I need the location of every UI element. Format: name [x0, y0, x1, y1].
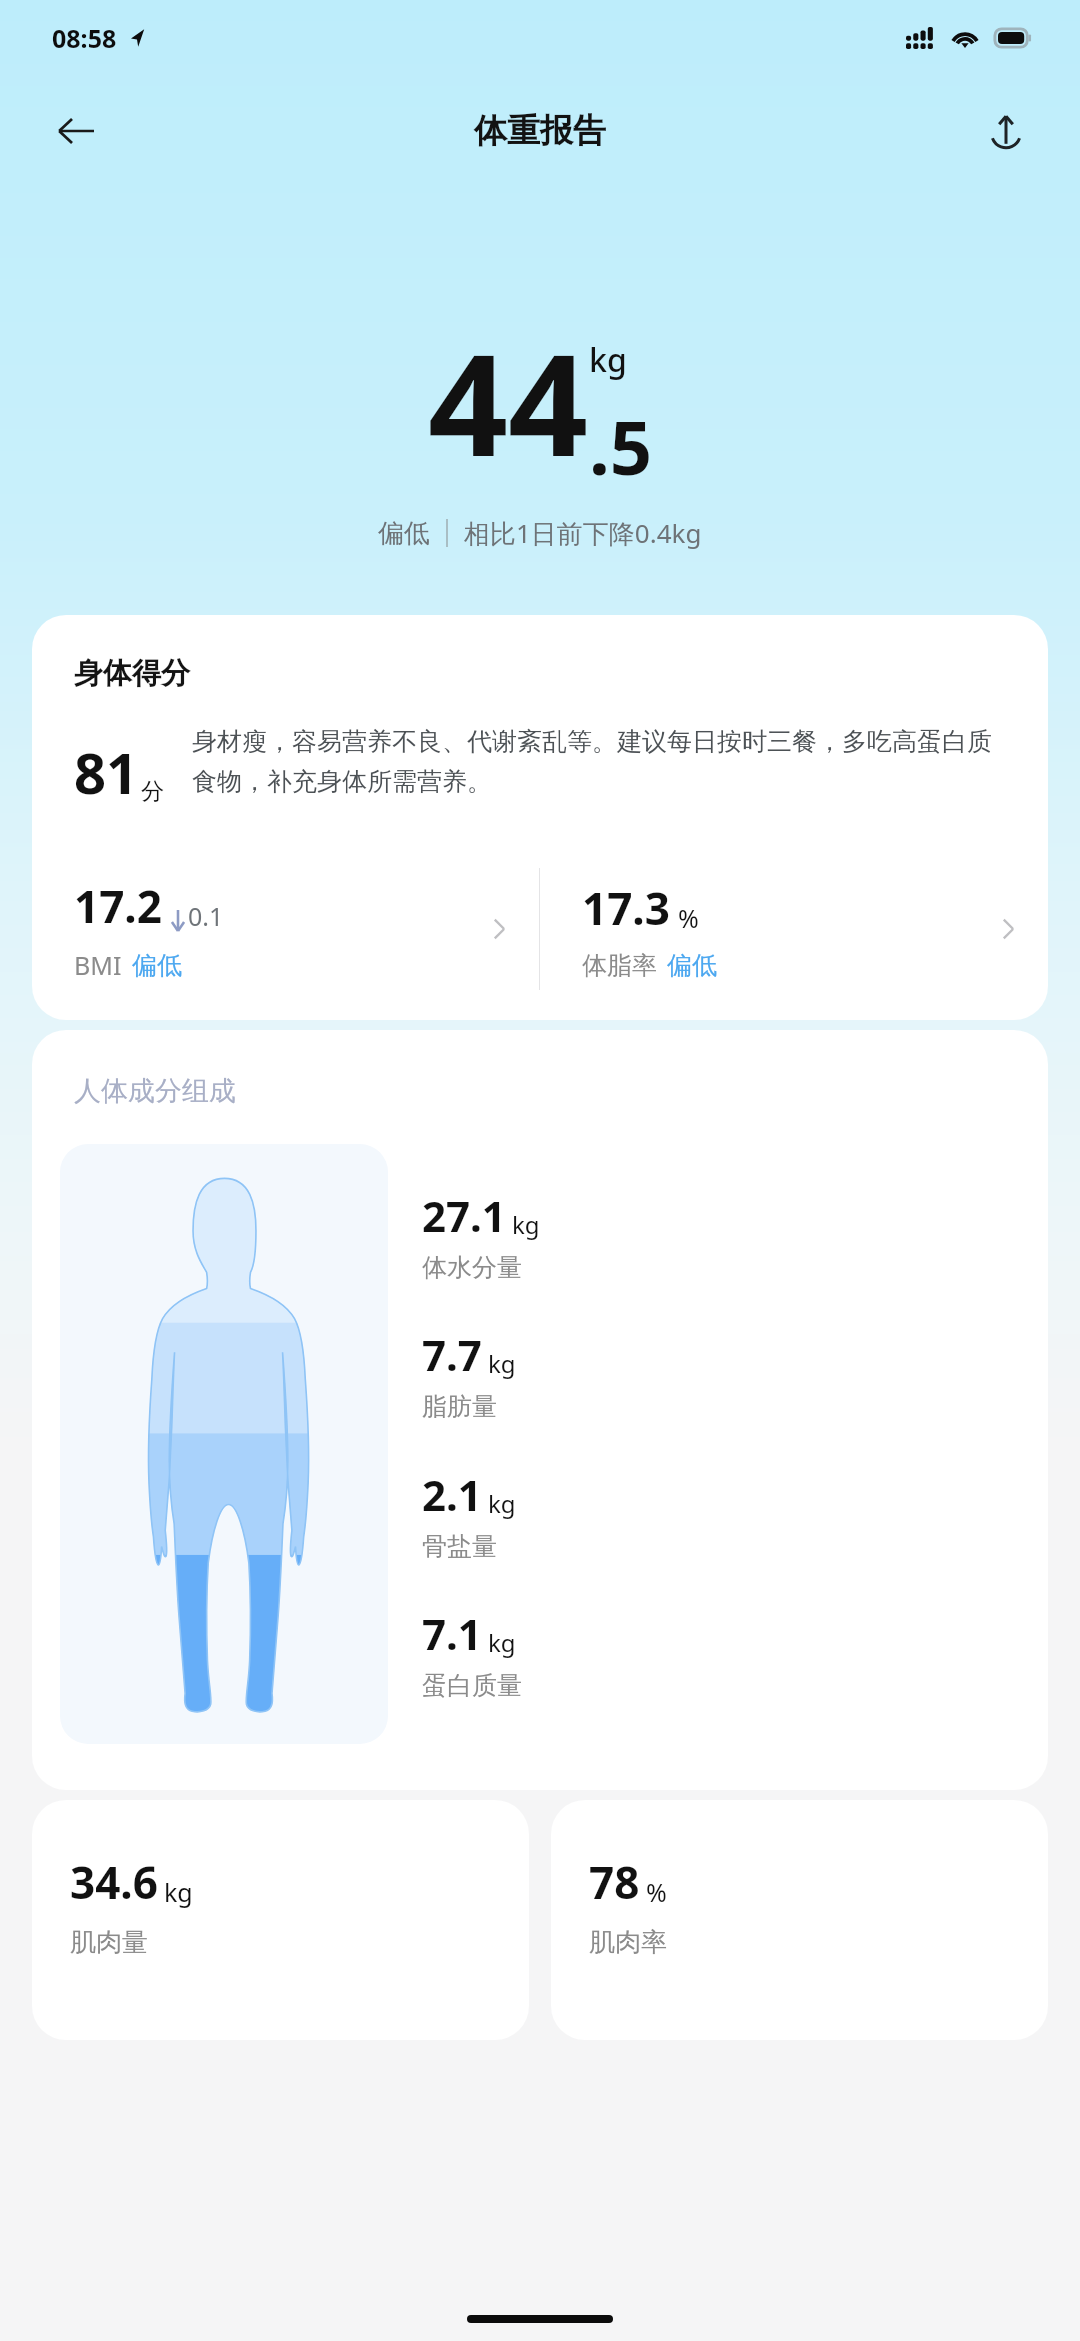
staticText: kg — [589, 338, 627, 382]
staticText: 81 — [74, 734, 139, 810]
staticText: 体重报告 — [474, 110, 606, 152]
staticText: 肌肉量 — [70, 1926, 148, 1959]
staticText: 27.1 — [422, 1187, 506, 1244]
staticText: 体脂率 — [582, 950, 657, 981]
staticText: 脂肪量 — [422, 1391, 497, 1422]
staticText: .5 — [589, 396, 653, 497]
staticText: BMI — [74, 948, 122, 982]
staticText: 偏低 — [132, 950, 182, 981]
staticText: 17.2 — [74, 876, 162, 936]
staticText: 肌肉率 — [589, 1926, 667, 1959]
staticText: 08:58 — [52, 21, 117, 55]
staticText: kg — [164, 1875, 193, 1909]
staticText: 相比1日前下降0.4kg — [464, 515, 702, 551]
staticText: 7.7 — [422, 1326, 482, 1383]
staticText: 偏低 — [378, 517, 430, 550]
button[interactable]: 34.6 — [32, 1800, 529, 2040]
staticText: 7.1 — [422, 1605, 482, 1662]
staticText: 78 — [589, 1852, 640, 1912]
staticText: 2.1 — [422, 1466, 482, 1523]
staticText: 44 — [428, 306, 589, 497]
button[interactable]: Share — [974, 99, 1038, 163]
staticText: 偏低 — [667, 950, 717, 981]
staticText: kg — [488, 1347, 516, 1380]
staticText: % — [646, 1875, 667, 1909]
staticText: kg — [488, 1626, 516, 1659]
staticText: 0.1 — [188, 899, 224, 933]
button[interactable]: 17.3 — [540, 854, 1048, 1004]
staticText: % — [678, 901, 699, 935]
button[interactable]: Back — [44, 99, 108, 163]
button[interactable]: 17.2 — [32, 854, 539, 1004]
staticText: 17.3 — [582, 878, 670, 938]
staticText: kg — [512, 1208, 540, 1241]
staticText: 人体成分组成 — [74, 1074, 236, 1108]
button[interactable]: 78 — [551, 1800, 1048, 2040]
staticText: 蛋白质量 — [422, 1670, 522, 1701]
staticText: 34.6 — [70, 1852, 158, 1912]
staticText: kg — [488, 1487, 516, 1520]
staticText: 体水分量 — [422, 1252, 522, 1283]
staticText: 身体得分 — [74, 655, 190, 692]
staticText: 分 — [141, 777, 164, 806]
staticText: 身材瘦，容易营养不良、代谢紊乱等。建议每日按时三餐，多吃高蛋白质食物，补充身体所… — [192, 726, 1010, 797]
staticText: 骨盐量 — [422, 1531, 497, 1562]
